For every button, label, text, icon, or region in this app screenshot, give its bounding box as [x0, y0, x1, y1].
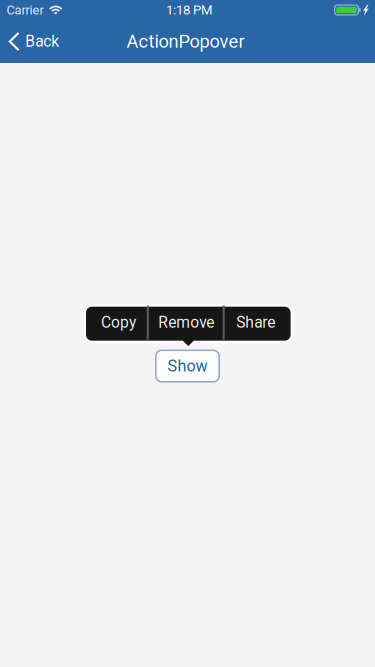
- staticText: Copy: [101, 313, 136, 332]
- button[interactable]: Share: [225, 305, 291, 339]
- staticText: Share: [236, 313, 275, 332]
- staticText: ActionPopover: [126, 31, 244, 52]
- button[interactable]: Remove: [149, 305, 223, 339]
- staticText: Carrier: [6, 2, 43, 17]
- staticText: Show: [167, 357, 207, 375]
- staticText: Back: [25, 32, 59, 51]
- staticText: Remove: [158, 313, 214, 332]
- staticText: 1:18 PM: [166, 2, 213, 18]
- button[interactable]: Copy: [86, 305, 147, 339]
- button[interactable]: Show: [156, 350, 219, 382]
- button[interactable]: Back: [0, 20, 69, 63]
